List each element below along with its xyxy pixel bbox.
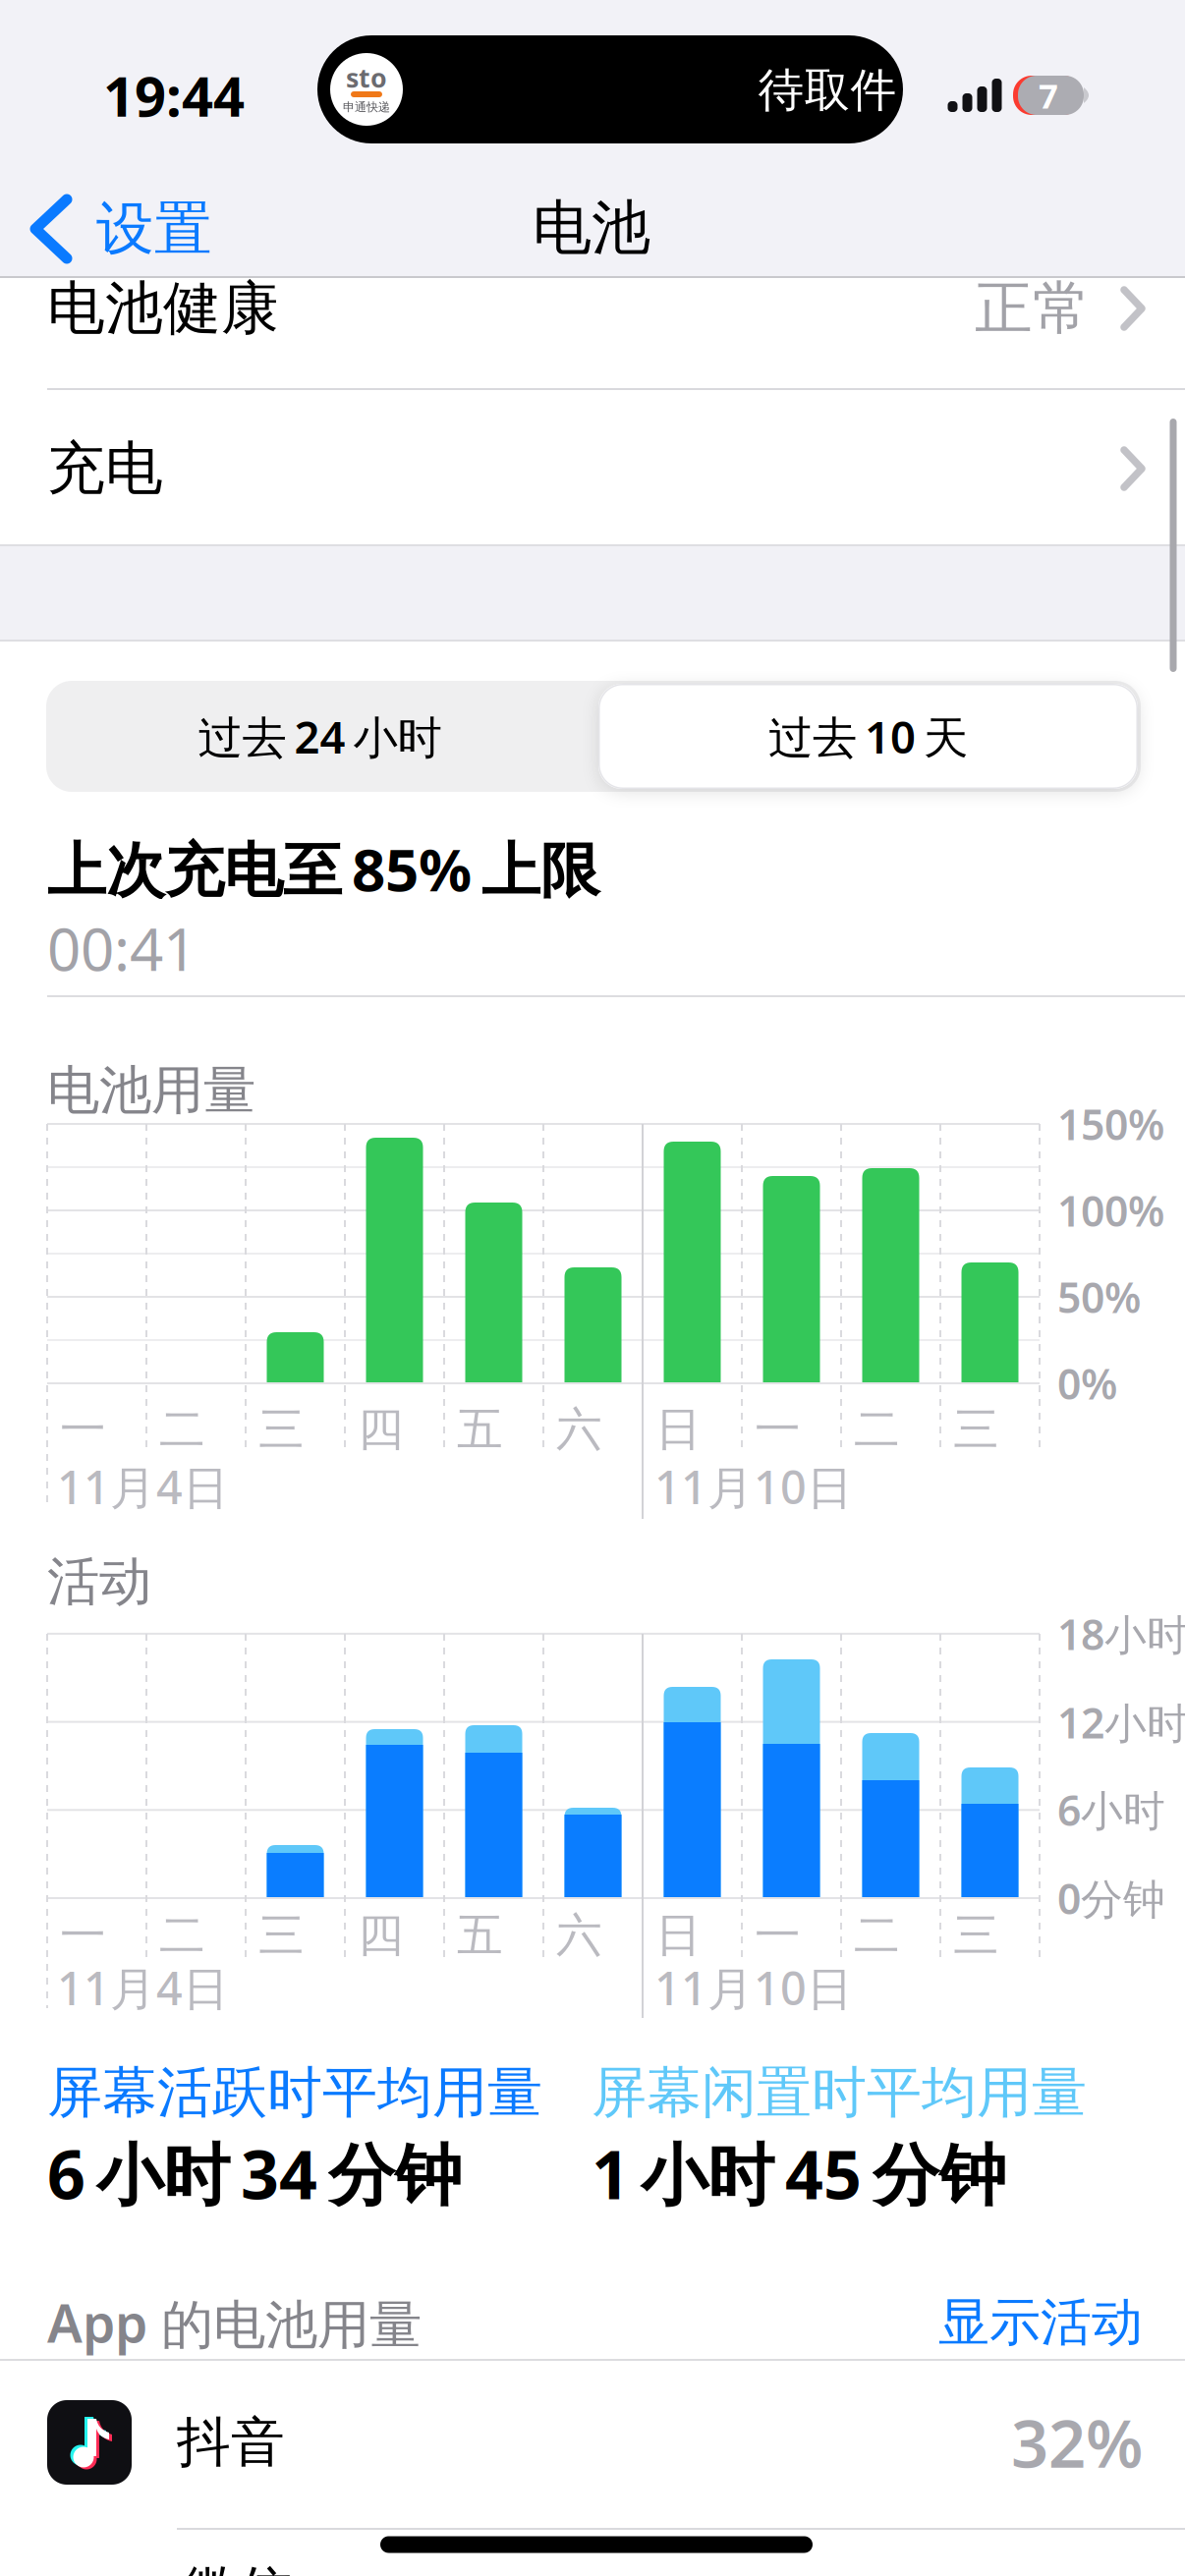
staticText: 六 xyxy=(556,1907,602,1964)
staticText: 150% xyxy=(1057,1096,1164,1152)
button[interactable]: 过去 24 小时 xyxy=(46,681,593,792)
staticText: 设置 xyxy=(96,194,212,264)
staticText: 五 xyxy=(457,1401,503,1458)
staticText: 二 xyxy=(854,1907,900,1964)
staticText: 32% xyxy=(1011,2399,1143,2486)
staticText: 过去 10 天 xyxy=(768,707,968,766)
button[interactable]: 设置 xyxy=(28,185,254,273)
staticText: 11月10日 xyxy=(654,1957,853,2018)
staticText: 六 xyxy=(556,1401,602,1458)
staticText: 日 xyxy=(655,1907,702,1964)
button[interactable]: 过去 10 天 xyxy=(598,684,1138,789)
staticText: sto xyxy=(346,60,387,95)
staticText: 正常 xyxy=(975,273,1091,344)
staticText: 18小时 xyxy=(1057,1606,1185,1662)
staticText: 1 小时 45 分钟 xyxy=(592,2129,1006,2218)
staticText: 三 xyxy=(953,1907,999,1964)
staticText: 一 xyxy=(60,1907,106,1964)
staticText: 微信 xyxy=(184,2558,292,2576)
staticText: 充电 xyxy=(47,433,163,504)
staticText: 四 xyxy=(358,1401,404,1458)
staticText: 6 小时 34 分钟 xyxy=(47,2129,462,2218)
staticText: 三 xyxy=(258,1401,305,1458)
staticText: 一 xyxy=(755,1907,801,1964)
staticText: 电池 xyxy=(533,192,650,264)
staticText: 一 xyxy=(755,1401,801,1458)
staticText: 日 xyxy=(655,1401,702,1458)
staticText: 过去 24 小时 xyxy=(198,707,442,766)
staticText: 屏幕活跃时平均用量 xyxy=(47,2059,542,2126)
staticText: 四 xyxy=(358,1907,404,1964)
staticText: 屏幕闲置时平均用量 xyxy=(592,2059,1087,2126)
staticText: 电池用量 xyxy=(47,1058,255,1123)
staticText: 三 xyxy=(953,1401,999,1458)
staticText: 二 xyxy=(854,1401,900,1458)
staticText: 活动 xyxy=(47,1550,151,1614)
staticText: 一 xyxy=(60,1401,106,1458)
staticText: 电池健康 xyxy=(47,273,279,344)
button[interactable]: 充电 xyxy=(0,410,1185,528)
staticText: 五 xyxy=(457,1907,503,1964)
staticText: 11月10日 xyxy=(654,1456,853,1517)
staticText: 6小时 xyxy=(1057,1782,1165,1838)
staticText: 显示活动 xyxy=(938,2291,1143,2354)
staticText: 100% xyxy=(1057,1183,1164,1238)
staticText: 三 xyxy=(258,1907,305,1964)
staticText: 12小时 xyxy=(1057,1694,1185,1750)
staticText: 0% xyxy=(1057,1355,1117,1411)
button[interactable]: 抖音 xyxy=(0,2359,1185,2526)
staticText: 上次充电至 85% 上限 xyxy=(47,829,599,908)
staticText: 二 xyxy=(159,1907,205,1964)
staticText: 0分钟 xyxy=(1057,1870,1165,1926)
staticText: 二 xyxy=(159,1401,205,1458)
staticText: 19:44 xyxy=(103,59,245,132)
staticText: 7 xyxy=(1039,73,1058,118)
staticText: 抖音 xyxy=(177,2409,285,2475)
staticText: 11月4日 xyxy=(57,1957,229,2018)
button[interactable]: 电池健康 xyxy=(0,254,1185,363)
staticText: 申通快递 xyxy=(343,100,390,114)
staticText: 00:41 xyxy=(47,909,197,987)
button[interactable]: 显示活动 xyxy=(750,2291,1143,2354)
staticText: 50% xyxy=(1057,1269,1141,1325)
staticText: 11月4日 xyxy=(57,1456,229,1517)
staticText: App 的电池用量 xyxy=(47,2288,422,2358)
staticText: 待取件 xyxy=(758,62,897,118)
